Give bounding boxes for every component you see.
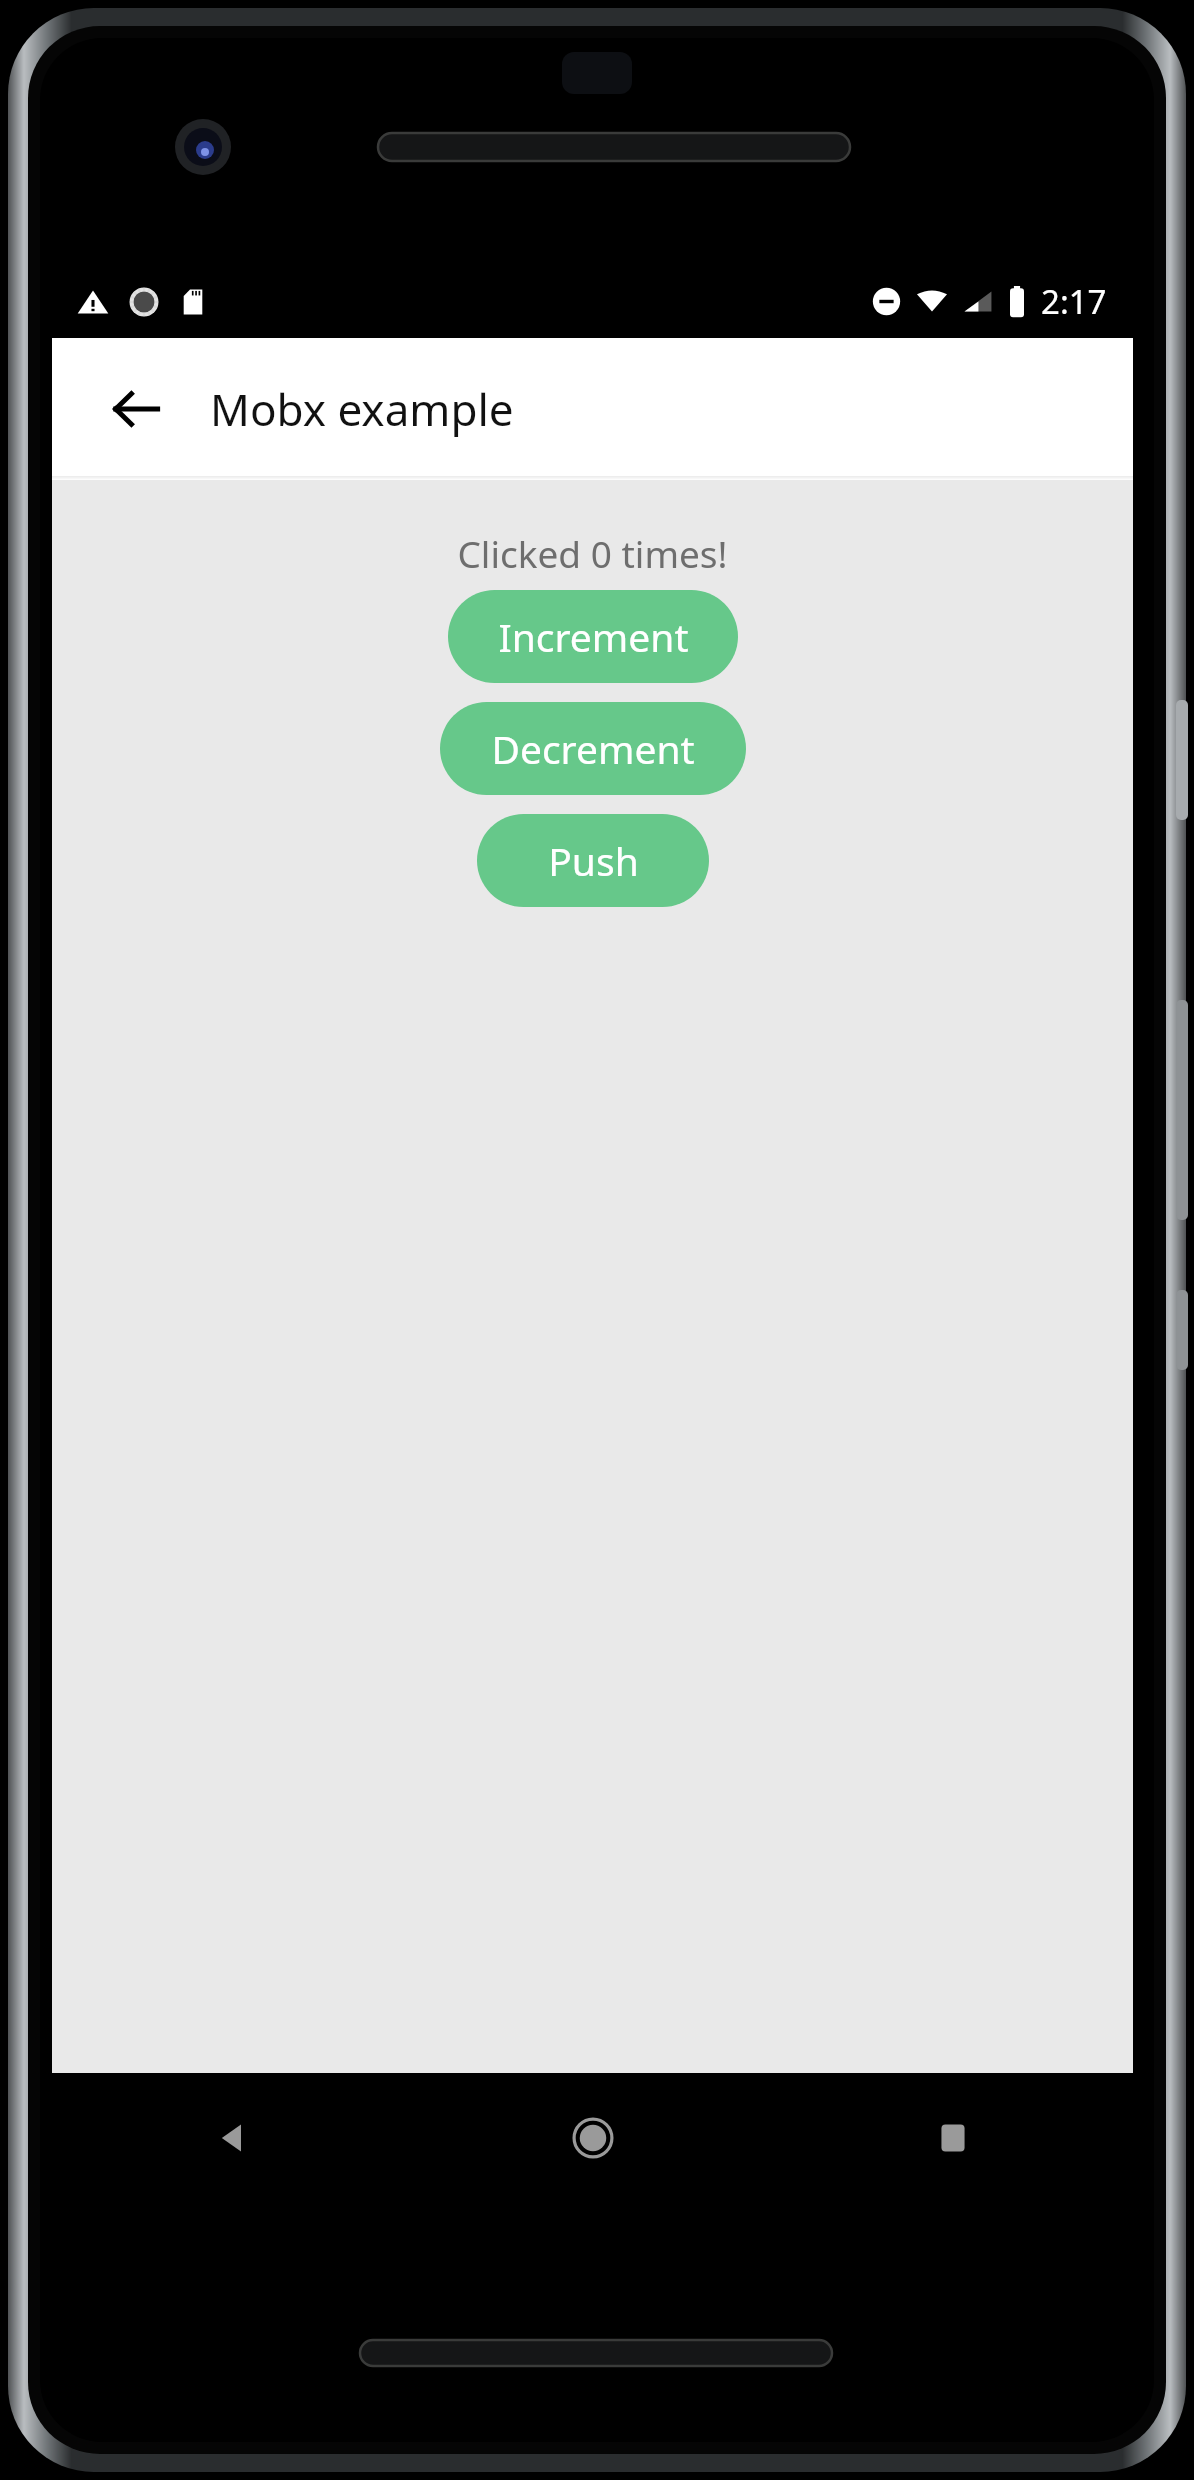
button[interactable]: Push [477, 814, 709, 907]
staticText: Decrement [491, 722, 695, 775]
button[interactable]: Back [52, 2073, 413, 2203]
button[interactable]: Recent apps [773, 2073, 1133, 2203]
button[interactable]: Increment [448, 590, 738, 683]
staticText: Mobx example [210, 379, 514, 439]
staticText: Increment [498, 610, 689, 663]
button[interactable]: Home [413, 2073, 773, 2203]
staticText: 2:17 [1041, 279, 1107, 324]
button[interactable]: Decrement [440, 702, 746, 795]
staticText: Push [548, 834, 639, 887]
button[interactable]: Back [96, 369, 176, 449]
staticText: Clicked 0 times! [457, 528, 728, 578]
